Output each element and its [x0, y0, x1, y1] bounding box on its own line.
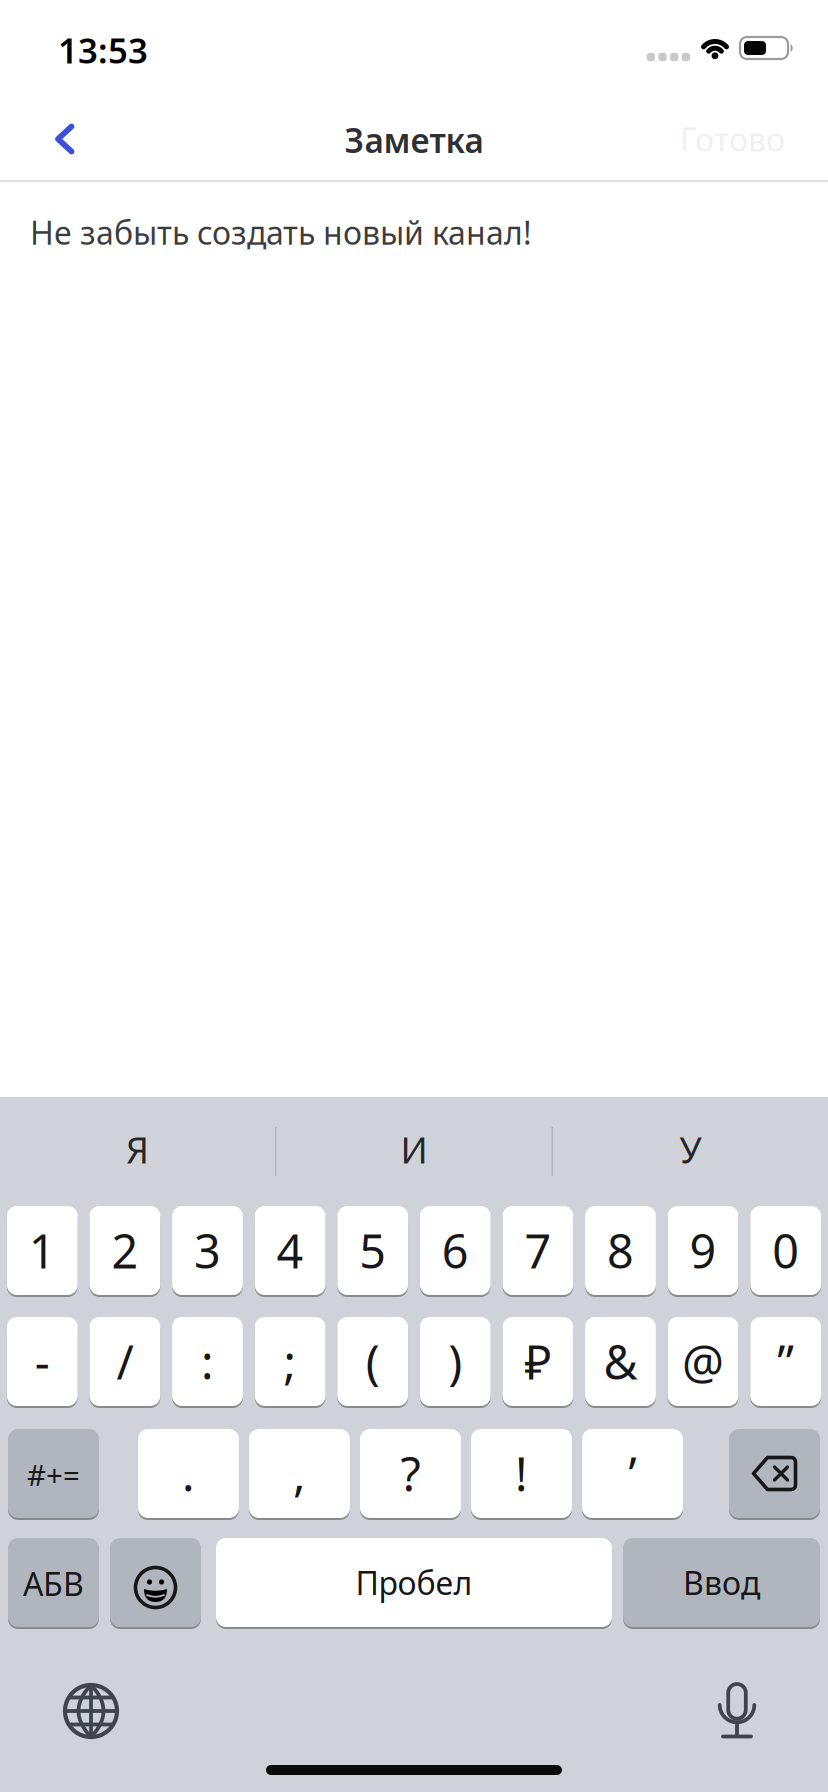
- button[interactable]: Delete: [729, 1429, 820, 1518]
- button[interactable]: 4: [255, 1206, 325, 1295]
- button[interactable]: :: [172, 1317, 243, 1406]
- button[interactable]: ,: [249, 1429, 350, 1518]
- staticText: Готово: [680, 118, 785, 160]
- button[interactable]: 0: [750, 1206, 821, 1295]
- button[interactable]: ’: [582, 1429, 683, 1518]
- staticText: Ввод: [683, 1561, 760, 1604]
- staticText: ?: [400, 1442, 420, 1504]
- button[interactable]: (: [337, 1317, 408, 1406]
- button[interactable]: Пробел: [216, 1538, 612, 1627]
- button[interactable]: ?: [360, 1429, 461, 1518]
- staticText: 3: [194, 1219, 221, 1281]
- button[interactable]: .: [138, 1429, 239, 1518]
- staticText: !: [515, 1442, 528, 1504]
- staticText: Я: [126, 1126, 149, 1173]
- staticText: -: [35, 1330, 50, 1392]
- staticText: 8: [607, 1219, 634, 1281]
- staticText: @: [682, 1330, 724, 1392]
- staticText: .: [182, 1442, 195, 1504]
- button[interactable]: 2: [89, 1206, 160, 1295]
- button[interactable]: 7: [502, 1206, 573, 1295]
- button[interactable]: Next keyboard: [0, 1627, 119, 1739]
- staticText: 4: [277, 1219, 304, 1281]
- button[interactable]: Готово: [680, 92, 828, 186]
- button[interactable]: -: [7, 1317, 78, 1406]
- button[interactable]: !: [471, 1429, 572, 1518]
- staticText: (: [366, 1330, 380, 1392]
- staticText: И: [400, 1126, 427, 1173]
- staticText: 9: [690, 1219, 717, 1281]
- button[interactable]: Я: [0, 1097, 275, 1206]
- staticText: :: [201, 1330, 214, 1392]
- staticText: 1: [29, 1219, 56, 1281]
- button[interactable]: Dictate: [0, 1627, 757, 1740]
- staticText: 0: [772, 1219, 799, 1281]
- button[interactable]: @: [668, 1317, 738, 1406]
- button[interactable]: ): [420, 1317, 491, 1406]
- staticText: АБВ: [23, 1562, 84, 1605]
- staticText: ”: [777, 1330, 794, 1392]
- button[interactable]: ;: [255, 1317, 325, 1406]
- staticText: У: [679, 1126, 701, 1173]
- staticText: 7: [524, 1219, 551, 1281]
- button[interactable]: 5: [337, 1206, 408, 1295]
- button[interactable]: #+=: [8, 1429, 99, 1518]
- staticText: Заметка: [344, 118, 483, 162]
- button[interactable]: 3: [172, 1206, 243, 1295]
- button[interactable]: Ввод: [623, 1538, 820, 1627]
- staticText: ;: [284, 1330, 297, 1392]
- staticText: 13:53: [58, 27, 148, 73]
- staticText: 6: [442, 1219, 469, 1281]
- staticText: ’: [628, 1442, 636, 1504]
- button[interactable]: &: [585, 1317, 656, 1406]
- button[interactable]: У: [553, 1097, 828, 1206]
- staticText: ₽: [524, 1330, 551, 1392]
- button[interactable]: 9: [668, 1206, 738, 1295]
- button[interactable]: АБВ: [8, 1538, 99, 1627]
- button[interactable]: 8: [585, 1206, 656, 1295]
- staticText: &: [603, 1330, 637, 1392]
- staticText: Пробел: [355, 1561, 472, 1604]
- button[interactable]: 1: [7, 1206, 78, 1295]
- staticText: Не забыть создать новый канал!: [30, 211, 532, 253]
- button[interactable]: ₽: [502, 1317, 573, 1406]
- button[interactable]: Emoji: [110, 1538, 201, 1627]
- staticText: /: [116, 1330, 133, 1392]
- button[interactable]: Back: [0, 94, 75, 184]
- staticText: 5: [359, 1219, 386, 1281]
- staticText: 2: [111, 1219, 138, 1281]
- staticText: #+=: [27, 1455, 80, 1494]
- button[interactable]: ”: [750, 1317, 821, 1406]
- button[interactable]: /: [89, 1317, 160, 1406]
- button[interactable]: 6: [420, 1206, 491, 1295]
- staticText: ): [448, 1330, 462, 1392]
- staticText: ,: [293, 1442, 306, 1504]
- button[interactable]: И: [276, 1097, 551, 1206]
